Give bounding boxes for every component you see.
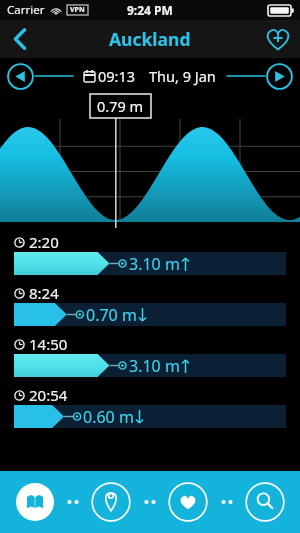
staticText: 0.60 m (83, 406, 134, 428)
button[interactable]: Add to favourites (256, 20, 300, 58)
staticText: 09:13 (98, 66, 136, 86)
button[interactable]: Next day (266, 63, 293, 90)
staticText: Auckland (109, 27, 191, 51)
staticText: 20:54 (29, 385, 68, 405)
staticText: Thu, 9 Jan (149, 66, 216, 86)
button[interactable]: Favourites (167, 481, 209, 523)
button[interactable]: Search (244, 481, 286, 523)
staticText: Carrier (7, 2, 45, 18)
staticText: 14:50 (29, 334, 68, 354)
button[interactable]: Guide (14, 481, 56, 523)
staticText: 2:20 (29, 232, 59, 252)
staticText: 0.70 m (86, 304, 137, 326)
staticText: 3.10 m (129, 253, 180, 275)
staticText: 0.79 m (97, 96, 144, 116)
button[interactable]: 8:24 (0, 283, 300, 334)
staticText: 3.10 m (129, 355, 180, 377)
button[interactable]: 2:20 (0, 232, 300, 283)
button[interactable]: Location (90, 481, 132, 523)
button[interactable]: Back (0, 20, 40, 58)
button[interactable]: 14:50 (0, 334, 300, 385)
button[interactable]: 20:54 (0, 385, 300, 436)
staticText: 8:24 (29, 283, 59, 303)
button[interactable]: Previous day (7, 63, 34, 90)
staticText: 9:24 PM (127, 2, 173, 18)
staticText: VPN (70, 5, 85, 15)
